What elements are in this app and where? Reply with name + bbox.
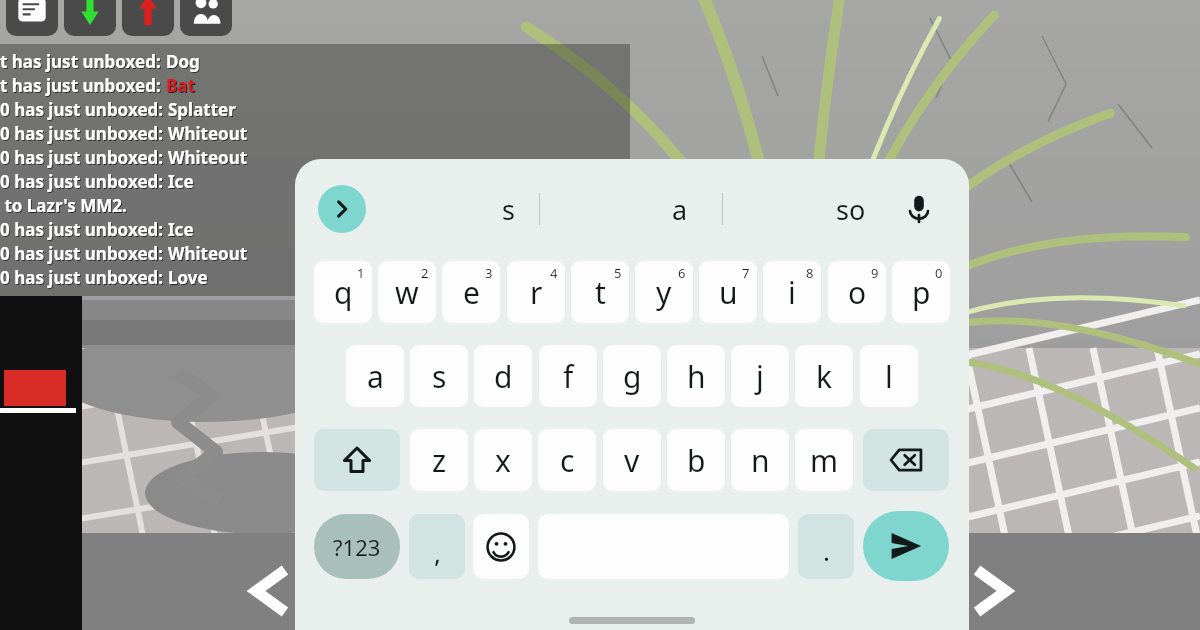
button[interactable]: Upload	[122, 0, 174, 36]
button[interactable]: w	[378, 261, 436, 323]
staticText: Love	[169, 267, 209, 290]
button[interactable]: Emoji	[473, 514, 529, 579]
staticText: Ice	[169, 171, 195, 194]
button[interactable]: Chat	[6, 0, 58, 36]
staticText: Ice	[168, 218, 194, 241]
button[interactable]: s	[458, 185, 558, 233]
button[interactable]: b	[667, 429, 725, 491]
staticText: Splatter	[169, 99, 237, 122]
staticText: to Lazr's MM2.	[1, 195, 128, 218]
button[interactable]: x	[474, 429, 532, 491]
button[interactable]: .	[798, 514, 854, 579]
staticText: Whiteout	[168, 146, 248, 169]
staticText: .	[823, 533, 830, 568]
button[interactable]: Backspace	[863, 429, 949, 491]
staticText: 0	[935, 264, 943, 282]
staticText: ?123	[333, 532, 381, 562]
staticText: l	[885, 356, 893, 397]
staticText: Bat	[166, 74, 195, 97]
staticText: Whiteout	[169, 147, 249, 170]
staticText: b	[687, 440, 706, 481]
staticText: Love	[168, 266, 208, 289]
button[interactable]: v	[603, 429, 661, 491]
button[interactable]: Send	[863, 511, 949, 581]
staticText: Dog	[167, 51, 201, 74]
staticText: 0 has just unboxed:	[1, 147, 169, 170]
button[interactable]: ?123	[314, 514, 400, 579]
button[interactable]: h	[667, 345, 725, 407]
staticText: 3	[485, 264, 493, 282]
button[interactable]: Download	[64, 0, 116, 36]
staticText: 0 has just unboxed:	[1, 219, 169, 242]
staticText: Ice	[168, 170, 194, 193]
button[interactable]: Players	[180, 0, 232, 36]
staticText: a	[367, 356, 384, 397]
staticText: d	[494, 356, 513, 397]
staticText: 0 has just unboxed:	[1, 99, 169, 122]
button[interactable]: l	[860, 345, 918, 407]
staticText: j	[756, 356, 764, 397]
staticText: Bat	[167, 75, 196, 98]
staticText: 0 has just unboxed:	[1, 243, 169, 266]
staticText: q	[334, 272, 353, 313]
staticText: t has just unboxed:	[0, 50, 166, 73]
button[interactable]: a	[630, 185, 730, 233]
staticText: 5	[614, 264, 622, 282]
staticText: t has just unboxed:	[1, 75, 167, 98]
staticText: 0 has just unboxed:	[0, 218, 168, 241]
staticText: w	[395, 272, 419, 313]
button[interactable]: e	[442, 261, 500, 323]
staticText: a	[672, 191, 688, 228]
button[interactable]: s	[410, 345, 468, 407]
staticText: Dog	[166, 50, 200, 73]
button[interactable]: Shift	[314, 429, 400, 491]
button[interactable]: t	[571, 261, 629, 323]
staticText: Whiteout	[168, 122, 248, 145]
button[interactable]: k	[795, 345, 853, 407]
staticText: 0 has just unboxed:	[0, 146, 168, 169]
button[interactable]: n	[731, 429, 789, 491]
staticText: 1	[357, 264, 365, 282]
button[interactable]: f	[539, 345, 597, 407]
button[interactable]: c	[538, 429, 596, 491]
staticText: Ice	[169, 219, 195, 242]
staticText: e	[463, 272, 480, 313]
staticText: i	[788, 272, 796, 313]
button[interactable]: p	[892, 261, 950, 323]
button[interactable]: d	[474, 345, 532, 407]
button[interactable]: i	[763, 261, 821, 323]
staticText: v	[624, 440, 640, 481]
staticText: Whiteout	[169, 243, 249, 266]
button[interactable]: j	[731, 345, 789, 407]
button[interactable]: o	[828, 261, 886, 323]
button[interactable]: u	[699, 261, 757, 323]
staticText: so	[836, 191, 866, 228]
button[interactable]: Expand suggestions	[318, 185, 366, 233]
button[interactable]: a	[346, 345, 404, 407]
staticText: n	[751, 440, 770, 481]
staticText: r	[530, 272, 543, 313]
staticText: 0 has just unboxed:	[0, 242, 168, 265]
staticText: t has just unboxed:	[0, 74, 166, 97]
staticText: 0 has just unboxed:	[0, 266, 168, 289]
staticText: 0 has just unboxed:	[1, 267, 169, 290]
staticText: g	[623, 356, 642, 397]
staticText: z	[432, 440, 447, 481]
button[interactable]: z	[410, 429, 468, 491]
button[interactable]: q	[314, 261, 372, 323]
button[interactable]: Voice input	[895, 185, 943, 233]
staticText: Whiteout	[168, 242, 248, 265]
button[interactable]: y	[635, 261, 693, 323]
button[interactable]: so	[801, 185, 901, 233]
staticText: s	[502, 191, 515, 228]
button[interactable]: m	[795, 429, 853, 491]
button[interactable]: r	[507, 261, 565, 323]
staticText: u	[719, 272, 738, 313]
button[interactable]: g	[603, 345, 661, 407]
staticText: 6	[678, 264, 686, 282]
staticText: p	[912, 272, 931, 313]
staticText: 0 has just unboxed:	[0, 98, 168, 121]
button[interactable]: ,	[409, 514, 465, 579]
staticText: 4	[550, 264, 558, 282]
